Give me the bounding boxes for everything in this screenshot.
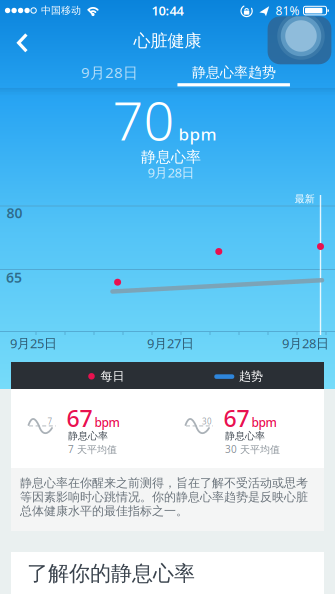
staticText: 65: [6, 268, 22, 287]
staticText: 7 天平均值: [68, 443, 117, 456]
staticText: 70: [112, 84, 174, 155]
staticText: 30 天平均值: [225, 443, 280, 456]
staticText: 每日: [100, 369, 124, 384]
button[interactable]: 了解你的静息心率: [11, 552, 324, 594]
button[interactable]: 返回: [0, 21, 44, 64]
staticText: 9月28日: [147, 164, 194, 181]
staticText: 趋势: [239, 369, 263, 384]
staticText: 7: [47, 416, 52, 427]
button[interactable]: 9月28日: [45, 58, 175, 86]
staticText: 静息心率: [68, 430, 108, 442]
staticText: 9月27日: [147, 335, 194, 352]
staticText: 9月25日: [10, 335, 57, 352]
staticText: bpm: [251, 414, 276, 430]
staticText: 静息心率在你醒来之前测得，旨在了解不受活动或思考: [20, 476, 308, 490]
staticText: 80: [7, 203, 23, 222]
staticText: 67: [66, 403, 92, 433]
staticText: bpm: [178, 123, 216, 145]
staticText: 静息心率趋势: [192, 64, 276, 81]
staticText: 9月28日: [282, 335, 329, 352]
staticText: 67: [223, 403, 249, 433]
staticText: 心脏健康: [133, 30, 201, 51]
staticText: 总体健康水平的最佳指标之一。: [20, 504, 188, 518]
staticText: 30: [202, 416, 212, 427]
staticText: 最新: [295, 193, 315, 205]
staticText: 10:44: [151, 2, 183, 19]
staticText: 了解你的静息心率: [27, 561, 195, 586]
staticText: 中国移动: [41, 4, 81, 17]
staticText: 等因素影响时心跳情况。你的静息心率趋势是反映心脏: [20, 490, 308, 504]
staticText: 9月28日: [81, 62, 138, 82]
staticText: bpm: [94, 414, 119, 430]
button[interactable]: 静息心率趋势: [169, 58, 299, 86]
staticText: 静息心率: [225, 430, 265, 442]
staticText: 81%: [276, 3, 300, 19]
button[interactable]: 辅助触控: [268, 16, 331, 64]
staticText: 静息心率: [141, 148, 201, 166]
